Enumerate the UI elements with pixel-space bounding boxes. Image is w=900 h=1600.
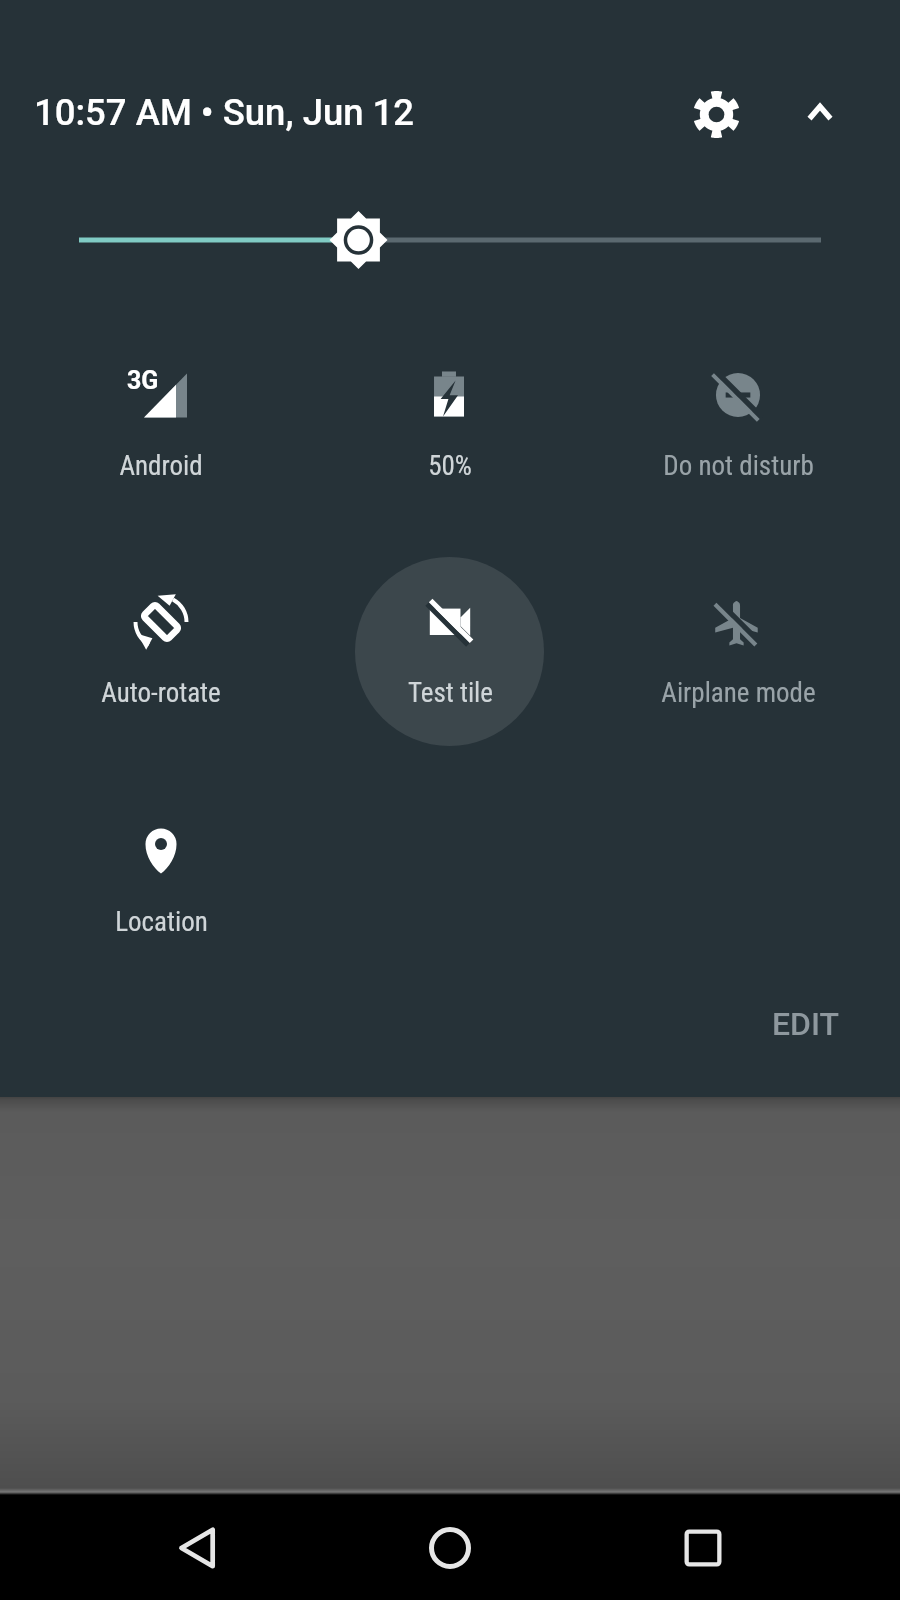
- button[interactable]: Recent apps: [651, 1495, 755, 1600]
- button[interactable]: 10:57 AM • Sun, Jun 12: [34, 91, 415, 134]
- button[interactable]: Collapse quick settings: [781, 74, 859, 152]
- button[interactable]: Do not disturb: [598, 343, 878, 493]
- button[interactable]: 50%: [310, 343, 590, 493]
- staticText: Test tile: [408, 677, 493, 709]
- staticText: Location: [115, 906, 208, 938]
- button[interactable]: Android: [21, 343, 301, 493]
- staticText: 10:57 AM • Sun, Jun 12: [34, 91, 415, 134]
- button[interactable]: Location: [21, 799, 301, 949]
- staticText: Android: [119, 450, 203, 482]
- button[interactable]: EDIT: [752, 991, 860, 1057]
- button[interactable]: Airplane mode: [598, 570, 878, 720]
- button[interactable]: Auto-rotate: [21, 570, 301, 720]
- staticText: Auto-rotate: [101, 677, 221, 709]
- button[interactable]: Back: [145, 1495, 249, 1600]
- staticText: Airplane mode: [661, 677, 816, 709]
- button[interactable]: Home: [398, 1495, 502, 1600]
- button[interactable]: Brightness: [0, 204, 900, 276]
- staticText: EDIT: [772, 1005, 840, 1043]
- button[interactable]: Settings: [676, 74, 756, 154]
- button[interactable]: Test tile: [310, 570, 590, 720]
- staticText: 3G: [127, 366, 159, 395]
- staticText: 50%: [428, 450, 472, 482]
- staticText: Do not disturb: [663, 450, 814, 482]
